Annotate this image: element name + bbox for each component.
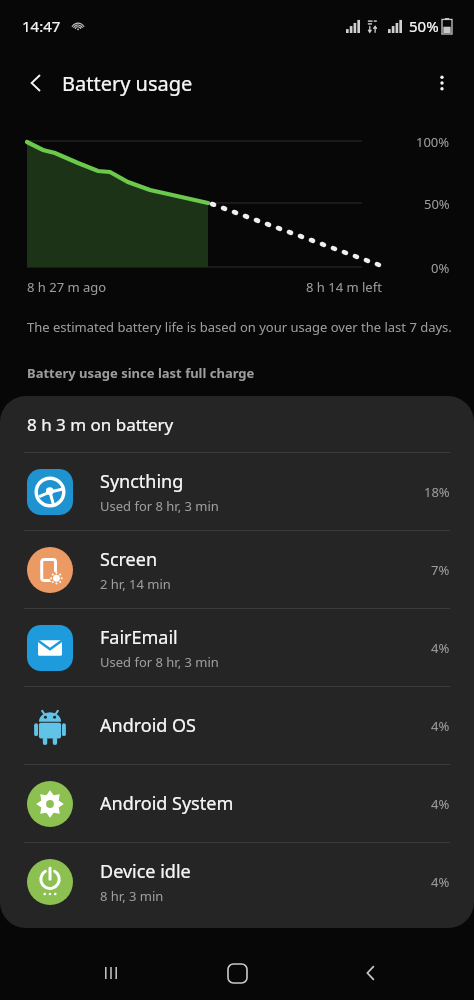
button[interactable]: Android OS	[0, 687, 474, 764]
staticText: 100%	[416, 133, 450, 151]
staticText: Syncthing	[100, 469, 184, 494]
button[interactable]: Screen	[0, 531, 474, 608]
button[interactable]: Syncthing	[0, 453, 474, 530]
staticText: Screen	[100, 547, 158, 572]
staticText: 0%	[431, 259, 450, 277]
button[interactable]: FairEmail	[0, 609, 474, 686]
button[interactable]: More options	[420, 61, 464, 105]
staticText: 4%	[431, 795, 450, 813]
staticText: 4%	[431, 873, 450, 891]
staticText: Battery usage since last full charge	[27, 364, 255, 382]
button[interactable]: Recent apps	[88, 950, 134, 996]
staticText: 7%	[431, 561, 450, 579]
staticText: Android OS	[100, 713, 196, 738]
staticText: Android System	[100, 791, 234, 816]
staticText: 4%	[431, 717, 450, 735]
staticText: 4%	[431, 639, 450, 657]
button[interactable]: Back	[14, 61, 58, 105]
staticText: Device idle	[100, 859, 191, 884]
button[interactable]: Device idle	[0, 843, 474, 920]
staticText: 2 hr, 14 min	[100, 575, 171, 593]
button[interactable]: Back	[348, 950, 394, 996]
staticText: Used for 8 hr, 3 min	[100, 497, 219, 515]
staticText: 18%	[424, 483, 450, 501]
staticText: 50%	[409, 16, 439, 36]
staticText: 50%	[424, 195, 450, 213]
button[interactable]: Android System	[0, 765, 474, 842]
staticText: 8 h 3 m on battery	[27, 413, 174, 436]
staticText: The estimated battery life is based on y…	[27, 318, 452, 336]
staticText: 8 hr, 3 min	[100, 887, 164, 905]
staticText: Used for 8 hr, 3 min	[100, 653, 219, 671]
staticText: 8 h 27 m ago	[27, 278, 107, 296]
staticText: 8 h 14 m left	[306, 278, 382, 296]
staticText: Battery usage	[62, 70, 193, 97]
button[interactable]: Home	[214, 950, 260, 996]
staticText: FairEmail	[100, 625, 178, 650]
staticText: 14:47	[22, 16, 61, 36]
